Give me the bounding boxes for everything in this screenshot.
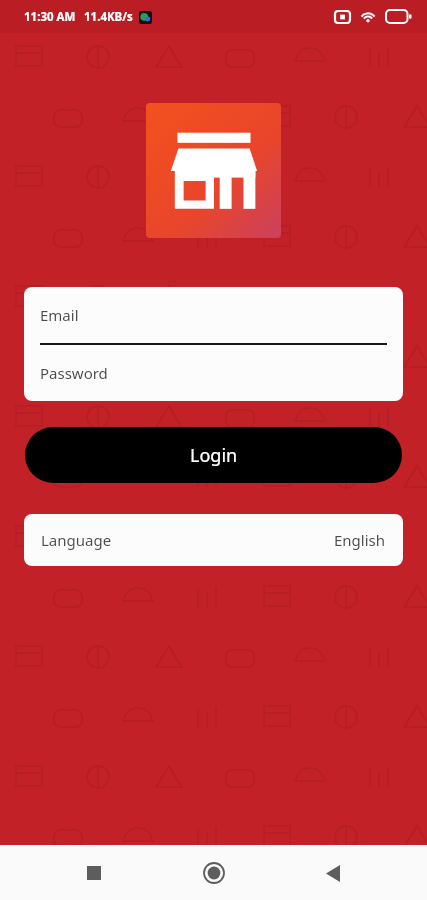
staticText: English — [334, 530, 386, 550]
staticText: 11:30 AM — [24, 9, 76, 25]
button[interactable]: Language — [24, 514, 403, 566]
button[interactable]: Back — [307, 847, 359, 899]
staticText: Language — [41, 530, 112, 550]
staticText: 11.4KB/s — [84, 9, 133, 25]
staticText: Login — [190, 443, 238, 468]
button[interactable]: Recent apps — [68, 847, 120, 899]
button[interactable]: Email — [24, 287, 403, 343]
button[interactable]: Home — [188, 847, 240, 899]
button[interactable]: Password — [24, 345, 403, 401]
button[interactable]: Login — [25, 427, 402, 483]
staticText: Email — [40, 305, 79, 325]
staticText: Password — [40, 363, 108, 383]
